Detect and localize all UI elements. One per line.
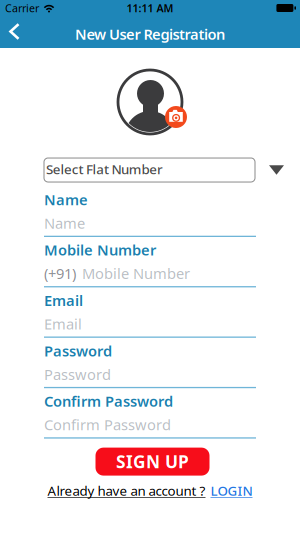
button[interactable]: SIGN UP xyxy=(95,448,209,476)
staticText: Confirm Password xyxy=(44,391,173,411)
staticText: Select Flat Number xyxy=(46,160,163,178)
staticText: Confirm Password xyxy=(44,415,171,434)
staticText: Name xyxy=(44,213,85,233)
staticText: Carrier xyxy=(5,1,39,15)
staticText: 11:11 AM xyxy=(126,1,173,15)
staticText: Already have an account ? xyxy=(47,482,205,499)
button[interactable]: Add profile photo xyxy=(165,106,187,128)
staticText: Email xyxy=(44,291,83,310)
button[interactable]: Back xyxy=(0,20,20,47)
staticText: LOGIN xyxy=(210,482,252,499)
button[interactable]: Password field xyxy=(44,358,256,388)
button[interactable]: Confirm Password field xyxy=(44,409,256,439)
staticText: Email xyxy=(44,314,82,334)
staticText: Name xyxy=(44,190,88,209)
staticText: Mobile Number xyxy=(82,264,190,283)
button[interactable]: Select Flat Number xyxy=(44,158,284,182)
staticText: New User Registration xyxy=(75,24,225,44)
staticText: Password xyxy=(44,364,111,384)
staticText: SIGN UP xyxy=(116,450,189,473)
staticText: Mobile Number xyxy=(44,240,156,260)
staticText: Password xyxy=(44,341,112,360)
button[interactable]: Mobile Number field xyxy=(44,257,256,287)
button[interactable]: Name field xyxy=(44,207,256,237)
button[interactable]: Login xyxy=(47,484,252,498)
button[interactable]: Email field xyxy=(44,308,256,338)
staticText: (+91) xyxy=(44,264,76,283)
